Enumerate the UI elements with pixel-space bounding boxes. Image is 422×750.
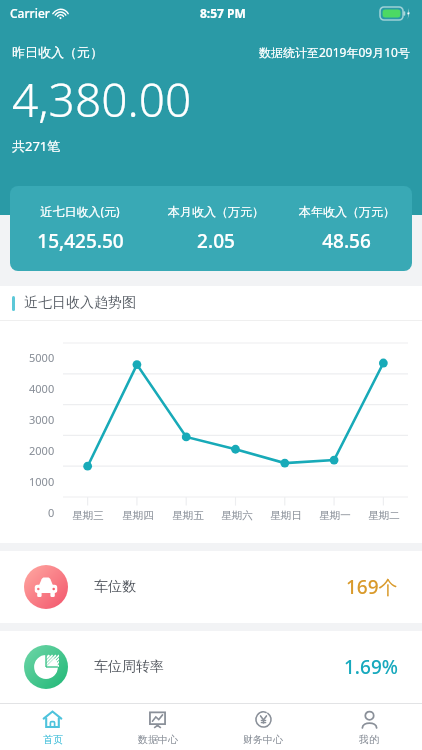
staticText: 8:57 PM [200,5,246,21]
staticText: 数据中心 [138,733,178,746]
staticText: 15,425.50 [37,228,124,254]
button[interactable]: 数据中心 [105,704,210,750]
staticText: 星期一 [319,509,351,522]
staticText: 1000 [29,474,55,489]
button[interactable]: 财务中心 [210,704,316,750]
staticText: 我的 [359,733,379,746]
staticText: 2.05 [197,228,235,254]
staticText: 财务中心 [243,733,283,746]
button[interactable]: 车位周转率 [0,631,422,703]
button[interactable]: 首页 [0,704,105,750]
staticText: 星期日 [270,509,302,522]
staticText: 4000 [29,381,55,396]
staticText: 0 [48,505,55,520]
staticText: Carrier [10,5,50,21]
staticText: 2000 [29,443,55,458]
staticText: 4,380.00 [12,68,192,131]
staticText: 星期五 [172,509,204,522]
button[interactable]: 我的 [316,704,422,750]
staticText: 星期三 [72,509,104,522]
staticText: 近七日收入(元) [40,203,120,219]
staticText: 5000 [29,350,55,365]
staticText: 共271笔 [12,137,61,155]
staticText: 本月收入（万元） [168,204,264,219]
staticText: 星期二 [368,509,400,522]
staticText: 169个 [346,574,398,600]
staticText: 近七日收入趋势图 [24,294,136,312]
staticText: 数据统计至2019年09月10号 [259,44,410,60]
staticText: 车位数 [94,578,136,596]
staticText: 星期六 [221,509,253,522]
button[interactable]: 车位数 [0,551,422,623]
staticText: 3000 [29,412,55,427]
staticText: 1.69% [344,654,398,680]
staticText: 星期四 [122,509,154,522]
staticText: 48.56 [322,228,371,254]
staticText: 本年收入（万元） [299,204,395,219]
staticText: 昨日收入（元） [12,44,103,60]
staticText: 车位周转率 [94,658,164,676]
staticText: 首页 [43,733,63,746]
button[interactable]: 近七日收入(元) [10,186,412,271]
